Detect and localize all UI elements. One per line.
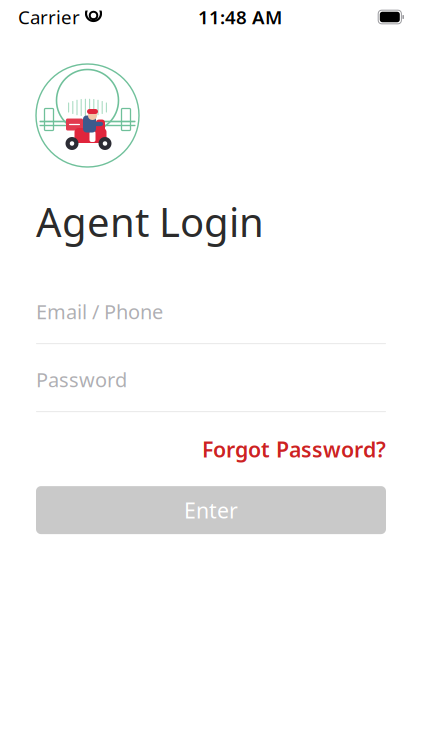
button[interactable]: Forgot Password? bbox=[36, 434, 386, 464]
staticText: Email / Phone bbox=[36, 298, 163, 325]
staticText: Carrier bbox=[18, 5, 80, 29]
staticText: Agent Login bbox=[36, 195, 264, 248]
staticText: Password bbox=[36, 366, 127, 393]
button[interactable]: Enter bbox=[36, 486, 386, 534]
staticText: 11:48 AM bbox=[198, 5, 282, 29]
staticText: Forgot Password? bbox=[202, 435, 386, 463]
staticText: Enter bbox=[184, 496, 238, 524]
